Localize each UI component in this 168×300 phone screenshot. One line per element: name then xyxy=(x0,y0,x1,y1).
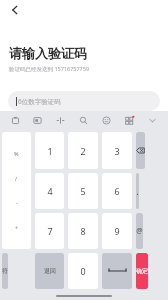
staticText: + xyxy=(15,224,19,231)
staticText: % xyxy=(14,150,19,157)
button[interactable]: Move cursor xyxy=(49,111,72,130)
button[interactable]: % xyxy=(2,132,31,249)
button[interactable]: 退回 xyxy=(35,253,64,289)
staticText: 0 xyxy=(80,265,86,277)
staticText: 1 xyxy=(47,145,53,157)
staticText: 5 xyxy=(80,185,86,197)
staticText: 符 xyxy=(2,267,8,275)
button[interactable]: 4 xyxy=(35,173,64,209)
staticText: 8 xyxy=(80,225,86,237)
staticText: 9 xyxy=(114,225,120,237)
button[interactable]: 3 xyxy=(102,132,132,169)
button[interactable]: 6 xyxy=(102,173,132,209)
button[interactable]: 5 xyxy=(68,173,98,209)
staticText: / xyxy=(15,175,18,182)
button[interactable]: . xyxy=(136,173,139,209)
staticText: 退回 xyxy=(44,267,56,275)
staticText: 2 xyxy=(80,145,86,157)
staticText: 确定 xyxy=(136,267,148,275)
staticText: 6位数字验证码 xyxy=(18,97,61,106)
staticText: 6 xyxy=(114,185,120,197)
button[interactable]: Translate xyxy=(26,111,49,130)
button[interactable]: 9 xyxy=(102,213,132,249)
staticText: 验证码已经发送到 15716757759 xyxy=(9,65,90,73)
staticText: 7 xyxy=(47,225,53,237)
button[interactable]: 0 xyxy=(68,253,98,289)
button[interactable]: 8 xyxy=(68,213,98,249)
button[interactable]: 1 xyxy=(35,132,64,169)
staticText: - xyxy=(16,199,18,206)
staticText: 4 xyxy=(47,185,53,197)
button[interactable]: 7 xyxy=(35,213,64,249)
button[interactable]: 确定 xyxy=(136,253,148,289)
button[interactable]: Hide keyboard xyxy=(141,111,164,130)
button[interactable]: Emoji xyxy=(95,111,118,130)
staticText: 请输入验证码 xyxy=(9,45,87,61)
button[interactable]: More xyxy=(118,111,141,130)
button[interactable]: 符 xyxy=(2,253,8,289)
staticText: @ xyxy=(136,226,143,236)
button[interactable]: Space xyxy=(102,253,132,289)
staticText: 3 xyxy=(114,145,120,157)
staticText: . xyxy=(136,186,139,197)
button[interactable]: Back xyxy=(5,0,25,20)
button[interactable]: 6位数字验证码 xyxy=(8,91,160,111)
button[interactable]: 2 xyxy=(68,132,98,169)
button[interactable]: Clipboard xyxy=(4,111,26,130)
button[interactable]: Search xyxy=(72,111,95,130)
button[interactable]: Backspace xyxy=(136,132,145,169)
button[interactable]: @ xyxy=(136,213,143,249)
